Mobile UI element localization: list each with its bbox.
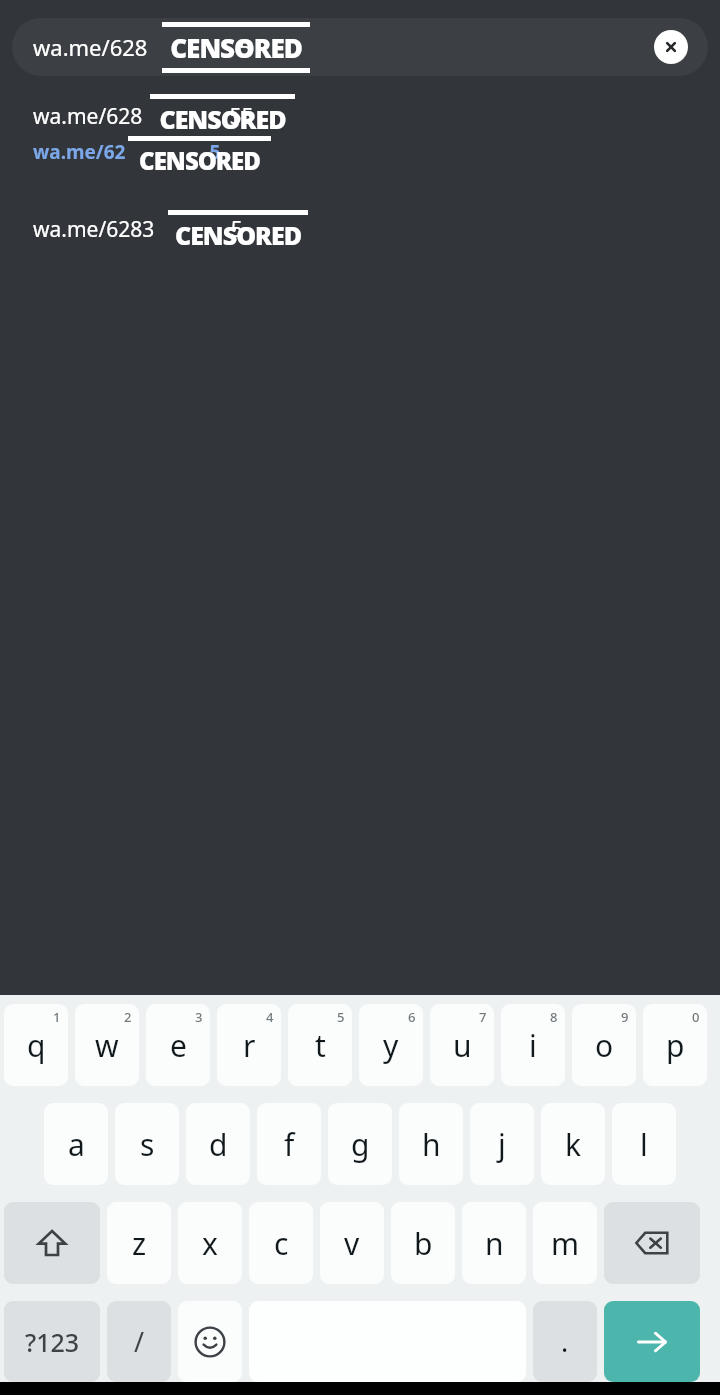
button[interactable]: p [643,1004,707,1086]
staticText: q [27,1025,46,1066]
button[interactable]: Shift [4,1202,100,1284]
staticText: 1 [53,1008,61,1026]
button[interactable]: ?123 [4,1301,100,1382]
button[interactable]: / [107,1301,171,1382]
button[interactable]: d [186,1103,250,1185]
button[interactable]: h [399,1103,463,1185]
button[interactable]: y [359,1004,423,1086]
button[interactable]: wa.me/6283 5 [0,210,720,248]
staticText: v [344,1223,360,1264]
staticText: d [209,1124,228,1165]
staticText: u [453,1025,472,1066]
button[interactable]: v [320,1202,384,1284]
button[interactable]: l [612,1103,676,1185]
staticText: y [383,1025,399,1066]
staticText: o [595,1025,614,1066]
staticText: i [529,1025,537,1066]
button[interactable]: k [541,1103,605,1185]
staticText: k [565,1124,582,1165]
staticText: s [140,1124,155,1165]
button[interactable]: z [107,1202,171,1284]
staticText: a [68,1124,85,1165]
staticText: 3 [195,1008,203,1026]
staticText: ?123 [25,1325,80,1359]
staticText: 6 [408,1008,416,1026]
button[interactable]: w [75,1004,139,1086]
staticText: n [485,1223,504,1264]
staticText: CENSORED [128,144,271,172]
staticText: x [202,1223,218,1264]
staticText: h [422,1124,441,1165]
button[interactable]: wa.me/628 55 [0,98,720,134]
button[interactable]: Emoji [178,1301,242,1382]
button[interactable]: o [572,1004,636,1086]
staticText: l [640,1124,648,1165]
staticText: CENSORED [162,30,310,65]
staticText: e [170,1025,187,1066]
button[interactable]: f [257,1103,321,1185]
staticText: b [414,1223,433,1264]
button[interactable]: b [391,1202,455,1284]
button[interactable]: a [44,1103,108,1185]
staticText: wa.me/628 5 [33,32,252,62]
staticText: wa.me/6283 5 [33,215,243,244]
staticText: z [132,1223,147,1264]
staticText: f [284,1124,295,1165]
button[interactable]: i [501,1004,565,1086]
button[interactable]: x [178,1202,242,1284]
staticText: p [666,1025,685,1066]
staticText: wa.me/628 55 [33,102,254,131]
staticText: j [498,1124,506,1165]
button[interactable]: e [146,1004,210,1086]
button[interactable]: . [533,1301,597,1382]
button[interactable]: r [217,1004,281,1086]
button[interactable]: q [4,1004,68,1086]
button[interactable]: Clear text [654,30,688,64]
staticText: m [551,1223,580,1264]
staticText: 9 [621,1008,629,1026]
staticText: CENSORED [150,102,295,130]
staticText: 2 [124,1008,132,1026]
button[interactable]: Backspace [604,1202,700,1284]
button[interactable]: j [470,1103,534,1185]
staticText: . [561,1323,569,1360]
button[interactable]: n [462,1202,526,1284]
button[interactable]: wa.me/62 5 [0,134,720,170]
staticText: wa.me/62 5 [33,139,221,165]
staticText: / [134,1323,145,1360]
button[interactable]: c [249,1202,313,1284]
button[interactable]: m [533,1202,597,1284]
button[interactable]: Go [604,1301,700,1382]
staticText: c [274,1223,289,1264]
staticText: 8 [550,1008,558,1026]
button[interactable]: wa.me/628 5 [12,18,708,76]
button[interactable]: g [328,1103,392,1185]
staticText: CENSORED [168,218,308,248]
staticText: t [315,1025,326,1066]
button[interactable]: s [115,1103,179,1185]
staticText: w [95,1025,119,1066]
staticText: 5 [337,1008,345,1026]
button[interactable]: u [430,1004,494,1086]
staticText: g [351,1124,370,1165]
staticText: 0 [692,1008,700,1026]
button[interactable]: t [288,1004,352,1086]
staticText: 7 [479,1008,487,1026]
staticText: r [243,1025,256,1066]
staticText: 4 [266,1008,274,1026]
